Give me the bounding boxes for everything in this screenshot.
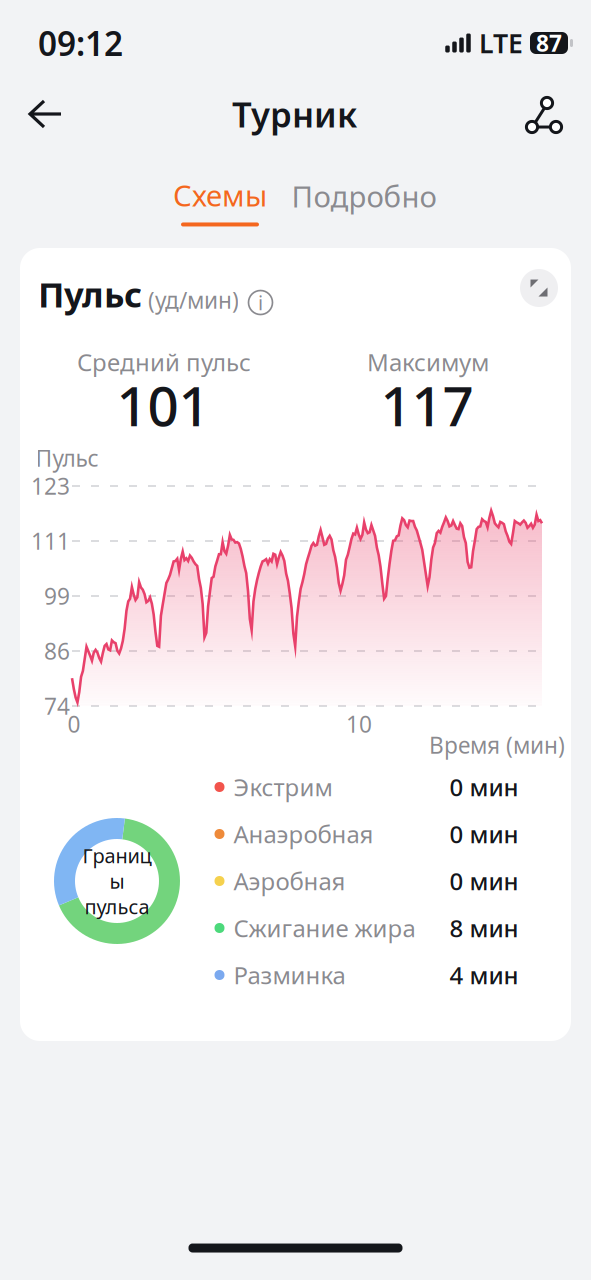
staticText: i bbox=[258, 289, 263, 316]
staticText: 101 bbox=[116, 369, 209, 441]
staticText: 09:12 bbox=[38, 21, 123, 65]
staticText: Средний пульс bbox=[77, 346, 251, 378]
staticText: Экстрим bbox=[233, 771, 332, 803]
staticText: 86 bbox=[44, 636, 70, 666]
staticText: Максимум bbox=[367, 346, 489, 378]
staticText: Турник bbox=[232, 91, 357, 137]
staticText: Границ bbox=[82, 842, 151, 869]
staticText: 87 bbox=[536, 28, 562, 58]
staticText: 123 bbox=[31, 471, 70, 501]
staticText: Сжигание жира bbox=[233, 912, 415, 944]
staticText: Анаэробная bbox=[233, 818, 373, 850]
staticText: 8 мин bbox=[449, 912, 518, 944]
staticText: 74 bbox=[44, 691, 70, 721]
staticText: Подробно bbox=[291, 176, 436, 215]
button[interactable]: Back bbox=[14, 82, 78, 146]
staticText: пульса bbox=[84, 893, 149, 920]
staticText: 0 мин bbox=[449, 771, 518, 803]
staticText: 117 bbox=[380, 369, 473, 441]
staticText: Разминка bbox=[233, 959, 345, 991]
staticText: 10 bbox=[346, 709, 372, 739]
button[interactable]: Подробно bbox=[285, 172, 442, 219]
staticText: 0 мин bbox=[449, 865, 518, 897]
staticText: LTE bbox=[479, 25, 523, 61]
staticText: (уд/мин) bbox=[142, 285, 239, 315]
staticText: 0 bbox=[67, 709, 80, 739]
staticText: 0 мин bbox=[449, 818, 518, 850]
staticText: 111 bbox=[31, 526, 70, 556]
staticText: Пульс bbox=[35, 443, 98, 473]
button[interactable]: Expand chart bbox=[520, 269, 558, 307]
staticText: Схемы bbox=[173, 175, 267, 214]
staticText: Пульс bbox=[38, 271, 142, 317]
button[interactable]: Share bbox=[511, 82, 575, 146]
staticText: 99 bbox=[44, 581, 70, 611]
button[interactable]: Схемы bbox=[167, 175, 273, 226]
staticText: Аэробная bbox=[233, 865, 345, 897]
staticText: Время (мин) bbox=[429, 730, 565, 760]
staticText: 4 мин bbox=[449, 959, 518, 991]
staticText: ы bbox=[109, 868, 124, 894]
